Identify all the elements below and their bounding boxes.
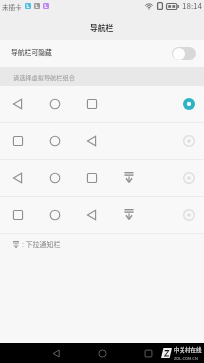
button[interactable] bbox=[0, 160, 204, 196]
staticText: 请选择虚拟导航栏组合 bbox=[13, 73, 75, 82]
button[interactable] bbox=[0, 197, 204, 233]
staticText: 导航栏 bbox=[90, 22, 114, 33]
button[interactable]: Back bbox=[46, 343, 66, 363]
button[interactable]: 导航栏可隐藏 bbox=[0, 40, 204, 67]
button[interactable]: Recents bbox=[138, 343, 158, 363]
staticText: : 下拉通知栏 bbox=[22, 239, 61, 249]
button[interactable] bbox=[0, 86, 204, 122]
staticText: 18:14 bbox=[182, 0, 202, 12]
staticText: 导航栏可隐藏 bbox=[11, 47, 52, 57]
staticText: 中关村在线 bbox=[174, 346, 202, 354]
button[interactable]: Home bbox=[92, 343, 112, 363]
staticText: ZOL.COM.CN bbox=[174, 355, 198, 361]
button[interactable] bbox=[0, 123, 204, 159]
staticText: 未插卡 bbox=[2, 2, 22, 11]
